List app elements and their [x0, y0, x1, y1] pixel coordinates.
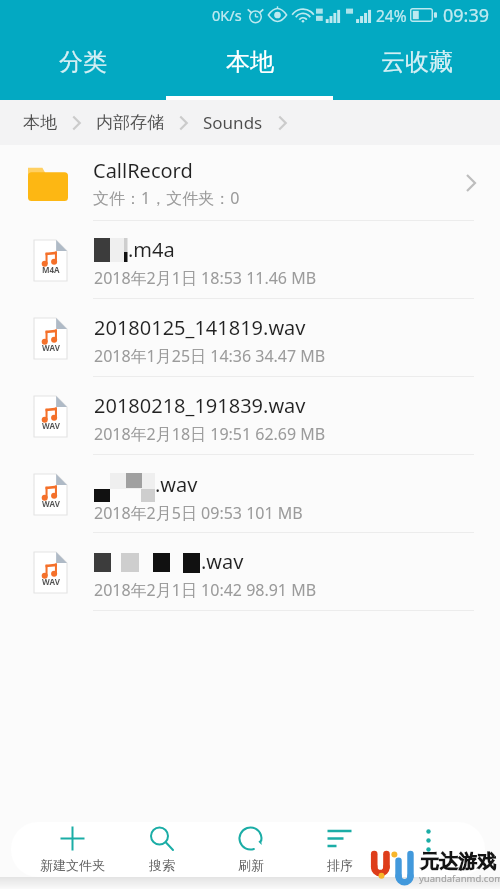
button[interactable]: 排序 — [295, 822, 384, 877]
button[interactable]: 云收藏 — [333, 30, 500, 100]
button[interactable]: WAV — [0, 455, 500, 533]
button[interactable]: M4A — [0, 221, 500, 299]
staticText: CallRecord — [93, 157, 193, 184]
button[interactable]: 本地 — [20, 112, 60, 133]
staticText: 20180125_141819.wav — [94, 314, 306, 341]
button[interactable]: WAV — [0, 533, 500, 611]
button[interactable]: WAV — [0, 377, 500, 455]
staticText: 2018年2月5日 09:53 101 MB — [94, 502, 303, 524]
staticText: 0K/s — [212, 5, 242, 25]
staticText: WAV — [42, 576, 60, 587]
staticText: .wav — [201, 548, 244, 575]
staticText: 元达游戏 — [420, 850, 496, 874]
button[interactable]: CallRecord — [0, 145, 500, 221]
button[interactable]: 更多 — [384, 822, 473, 877]
staticText: 刷新 — [238, 857, 264, 873]
staticText: 内部存储 — [96, 112, 164, 133]
button[interactable]: WAV — [0, 299, 500, 377]
staticText: Sounds — [203, 111, 263, 134]
staticText: M4A — [42, 264, 60, 275]
staticText: 本地 — [226, 47, 274, 77]
staticText: 云收藏 — [381, 47, 453, 77]
staticText: 文件：1，文件夹：0 — [93, 187, 240, 209]
staticText: 2018年2月18日 19:51 62.69 MB — [94, 423, 326, 445]
staticText: yuandafanmd.com — [419, 872, 500, 885]
staticText: 2018年2月1日 18:53 11.46 MB — [94, 267, 317, 289]
button[interactable]: 本地 — [166, 30, 333, 100]
staticText: WAV — [42, 498, 60, 509]
staticText: WAV — [42, 342, 60, 353]
button[interactable]: 内部存储 — [93, 112, 167, 133]
staticText: .m4a — [128, 236, 175, 263]
staticText: 新建文件夹 — [40, 857, 105, 873]
button[interactable]: 新建文件夹 — [28, 822, 117, 877]
button[interactable]: 搜索 — [117, 822, 206, 877]
staticText: 2018年2月1日 10:42 98.91 MB — [94, 579, 317, 601]
staticText: 分类 — [59, 47, 107, 77]
staticText: WAV — [42, 420, 60, 431]
button[interactable]: 分类 — [0, 30, 166, 100]
button[interactable]: 刷新 — [206, 822, 295, 877]
staticText: 20180218_191839.wav — [94, 392, 306, 419]
staticText: 2018年1月25日 14:36 34.47 MB — [94, 345, 326, 367]
staticText: .wav — [155, 471, 198, 498]
staticText: 本地 — [23, 112, 57, 133]
staticText: 搜索 — [149, 857, 175, 873]
staticText: 排序 — [327, 857, 353, 873]
staticText: 09:39 — [443, 3, 490, 28]
button[interactable]: Sounds — [200, 111, 266, 134]
staticText: 24% — [376, 5, 407, 26]
